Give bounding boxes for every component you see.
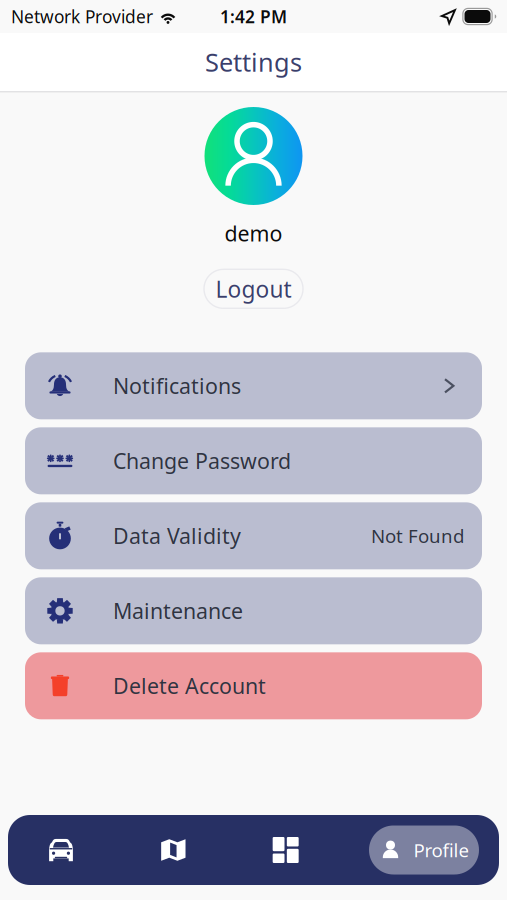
staticText: Profile [413, 838, 469, 862]
staticText: Change Password [113, 447, 291, 475]
button[interactable]: Profile [369, 825, 479, 874]
staticText: Not Found [371, 523, 464, 548]
staticText: Logout [215, 274, 291, 304]
button[interactable]: Map [144, 825, 202, 875]
staticText: 1:42 PM [220, 5, 287, 28]
button[interactable]: Dashboard [257, 825, 315, 875]
button[interactable]: Delete Account [25, 652, 482, 719]
button[interactable]: Vehicles [32, 825, 90, 875]
button[interactable]: Change Password [25, 427, 482, 494]
button[interactable]: Logout [204, 269, 303, 308]
staticText: Settings [205, 45, 302, 79]
staticText: demo [224, 219, 282, 247]
staticText: Network Provider [11, 5, 153, 28]
button[interactable]: Data Validity [25, 502, 482, 569]
staticText: Notifications [113, 372, 241, 400]
staticText: Delete Account [113, 672, 266, 700]
staticText: Data Validity [113, 522, 241, 550]
staticText: Maintenance [113, 597, 243, 625]
button[interactable]: Maintenance [25, 577, 482, 644]
button[interactable]: Notifications [25, 352, 482, 419]
